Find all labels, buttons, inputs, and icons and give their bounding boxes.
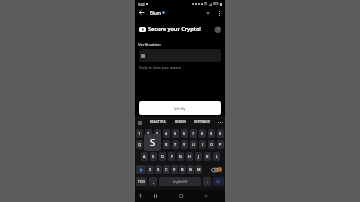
button[interactable]: V <box>171 165 178 174</box>
button[interactable]: 8 <box>199 129 206 138</box>
button[interactable]: M <box>195 165 202 174</box>
button[interactable]: Keyboard settings <box>137 120 142 125</box>
button[interactable]: Shift <box>136 165 146 174</box>
button[interactable]: Back <box>137 8 146 17</box>
staticText: 8 <box>201 131 204 136</box>
button[interactable]: . <box>203 177 211 186</box>
button[interactable]: X <box>155 165 162 174</box>
button[interactable]: L <box>213 152 220 161</box>
button[interactable]: 1 <box>136 129 143 138</box>
staticText: S <box>152 154 155 159</box>
staticText: C <box>165 167 168 172</box>
button[interactable]: J <box>195 152 202 161</box>
staticText: . <box>207 179 208 184</box>
button[interactable]: B <box>179 165 186 174</box>
button[interactable]: BENON <box>175 120 186 124</box>
button[interactable]: Voice input <box>136 191 145 200</box>
staticText: I <box>202 142 204 147</box>
staticText: B <box>181 167 184 172</box>
button[interactable]: 4 <box>163 129 170 138</box>
button[interactable]: More options <box>215 9 223 17</box>
staticText: Verify to claim your reward <box>139 65 181 69</box>
button[interactable]: Recents <box>151 191 160 200</box>
staticText: English(US) <box>173 180 188 184</box>
button[interactable] <box>139 49 221 62</box>
button[interactable]: GO <box>213 177 224 186</box>
staticText: 9 <box>210 131 213 136</box>
staticText: GO <box>216 180 221 184</box>
button[interactable]: 6 <box>181 129 188 138</box>
button[interactable]: E <box>154 140 161 149</box>
button[interactable]: Backspace <box>203 165 225 174</box>
staticText: 2 <box>147 131 150 136</box>
button[interactable]: N <box>187 165 194 174</box>
staticText: F <box>171 154 173 159</box>
button[interactable]: 2 <box>145 129 152 138</box>
button[interactable]: U <box>190 140 197 149</box>
staticText: S <box>150 136 156 149</box>
staticText: O <box>210 142 213 147</box>
button[interactable]: More suggestions <box>218 120 223 125</box>
button[interactable]: K <box>204 152 211 161</box>
staticText: V <box>173 167 176 172</box>
staticText: N <box>189 167 192 172</box>
button[interactable]: 9 <box>208 129 215 138</box>
button[interactable]: F <box>168 152 175 161</box>
staticText: J <box>198 154 200 159</box>
staticText: T <box>174 142 177 147</box>
button[interactable]: Home <box>176 191 185 200</box>
button[interactable]: G <box>177 152 184 161</box>
staticText: Y <box>183 142 186 147</box>
staticText: M <box>197 167 201 172</box>
staticText: 7 <box>192 131 195 136</box>
button[interactable]: ?123 <box>136 177 147 186</box>
button[interactable]: 5 <box>172 129 179 138</box>
button[interactable]: BERTRAND <box>194 120 210 124</box>
staticText: ?123 <box>138 180 145 184</box>
button[interactable]: Q <box>136 140 143 149</box>
staticText: Z <box>149 167 152 172</box>
staticText: Blum <box>150 10 161 16</box>
staticText: D <box>161 154 164 159</box>
staticText: U <box>192 142 195 147</box>
button[interactable]: Verify <box>139 101 221 115</box>
button[interactable]: Reload <box>214 26 221 33</box>
button[interactable]: English(US) <box>159 177 201 186</box>
staticText: G <box>179 154 182 159</box>
button[interactable]: Y <box>181 140 188 149</box>
staticText: Q <box>138 142 141 147</box>
staticText: Secure your Crypto! <box>148 25 201 33</box>
button[interactable]: T <box>172 140 179 149</box>
staticText: K <box>206 154 209 159</box>
button[interactable]: A <box>141 152 148 161</box>
button[interactable]: Z <box>147 165 154 174</box>
staticText: 4 <box>165 131 168 136</box>
staticText: 5 <box>174 131 177 136</box>
staticText: Verify <box>174 105 186 111</box>
staticText: W <box>147 142 151 147</box>
button[interactable]: P <box>217 140 224 149</box>
button[interactable]: I <box>199 140 206 149</box>
button[interactable]: C <box>163 165 170 174</box>
button[interactable]: H <box>186 152 193 161</box>
button[interactable]: D <box>159 152 166 161</box>
button[interactable]: 7 <box>190 129 197 138</box>
button[interactable]: O <box>208 140 215 149</box>
button[interactable]: Hide keyboard <box>201 191 210 200</box>
staticText: 1 <box>138 131 141 136</box>
button[interactable]: BEAUTIFUL <box>150 120 167 124</box>
button[interactable]: R <box>163 140 170 149</box>
staticText: L <box>216 154 218 159</box>
staticText: P <box>219 142 222 147</box>
staticText: 0 <box>219 131 222 136</box>
staticText: , <box>153 179 154 184</box>
button[interactable]: , <box>149 177 157 186</box>
button[interactable]: S <box>150 152 157 161</box>
staticText: A <box>143 154 146 159</box>
button[interactable]: 3 <box>154 129 161 138</box>
button[interactable]: 0 <box>217 129 224 138</box>
button[interactable]: Expand <box>203 8 212 17</box>
staticText: 3 <box>156 131 159 136</box>
button[interactable]: W <box>145 140 152 149</box>
